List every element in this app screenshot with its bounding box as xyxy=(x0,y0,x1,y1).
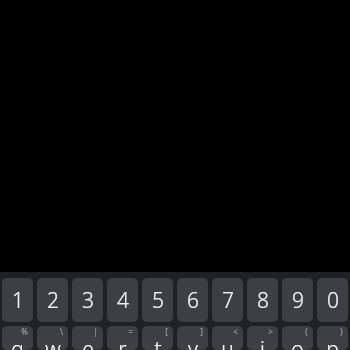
button[interactable]: \ xyxy=(37,326,68,350)
button[interactable]: 2 xyxy=(37,278,68,322)
button[interactable]: < xyxy=(212,326,243,350)
button[interactable]: 7 xyxy=(212,278,243,322)
staticText: ( xyxy=(305,326,308,337)
staticText: e xyxy=(82,335,94,350)
button[interactable]: [ xyxy=(142,326,173,350)
staticText: y xyxy=(188,335,198,350)
staticText: < xyxy=(233,326,238,337)
button[interactable]: = xyxy=(107,326,138,350)
staticText: r xyxy=(118,335,127,350)
staticText: = xyxy=(128,326,133,337)
staticText: 6 xyxy=(187,286,199,315)
staticText: > xyxy=(268,326,273,337)
staticText: t xyxy=(154,335,162,350)
staticText: ] xyxy=(200,326,203,337)
staticText: 1 xyxy=(12,286,24,315)
staticText: 9 xyxy=(292,286,304,315)
staticText: p xyxy=(326,335,339,350)
button[interactable]: | xyxy=(72,326,103,350)
button[interactable]: 0 xyxy=(317,278,348,322)
staticText: o xyxy=(291,335,304,350)
staticText: w xyxy=(45,335,61,350)
button[interactable]: 3 xyxy=(72,278,103,322)
staticText: ) xyxy=(340,326,343,337)
button[interactable]: 4 xyxy=(107,278,138,322)
button[interactable]: > xyxy=(247,326,278,350)
button[interactable]: 5 xyxy=(142,278,173,322)
staticText: 0 xyxy=(327,286,339,315)
button[interactable]: 1 xyxy=(2,278,33,322)
staticText: q xyxy=(11,335,24,350)
staticText: 8 xyxy=(257,286,269,315)
staticText: % xyxy=(21,326,28,337)
staticText: | xyxy=(93,326,98,337)
staticText: \ xyxy=(60,326,63,337)
button[interactable]: ) xyxy=(317,326,348,350)
staticText: u xyxy=(221,335,234,350)
button[interactable]: 8 xyxy=(247,278,278,322)
staticText: i xyxy=(260,335,265,350)
staticText: 7 xyxy=(222,286,234,315)
staticText: 2 xyxy=(47,286,59,315)
button[interactable]: ] xyxy=(177,326,208,350)
button[interactable]: % xyxy=(2,326,33,350)
staticText: 5 xyxy=(152,286,164,315)
button[interactable]: 6 xyxy=(177,278,208,322)
staticText: 3 xyxy=(82,286,94,315)
button[interactable]: 9 xyxy=(282,278,313,322)
staticText: 4 xyxy=(117,286,129,315)
staticText: [ xyxy=(165,326,168,337)
button[interactable]: ( xyxy=(282,326,313,350)
